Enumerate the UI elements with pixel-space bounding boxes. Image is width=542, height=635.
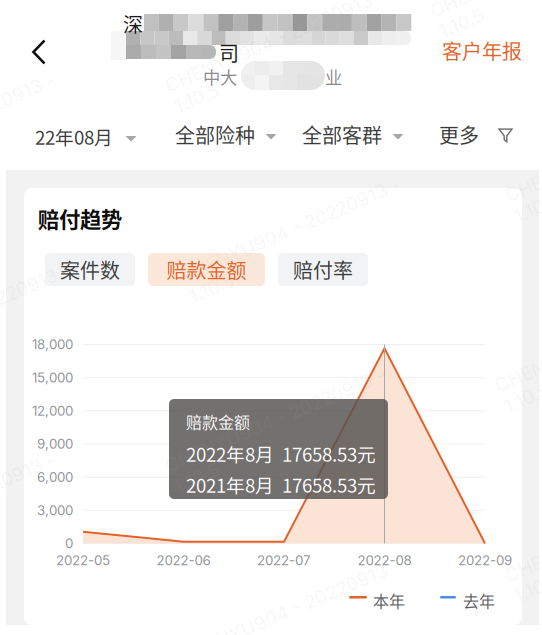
staticText: CHENYU904 - 20220913 - 1.10.5 [0, 488, 68, 534]
button[interactable]: 全部险种 [175, 120, 277, 149]
staticText: 深 [123, 9, 143, 38]
staticText: 2022-09 [458, 552, 512, 568]
staticText: 2022-08 [357, 552, 411, 568]
staticText: 2022-07 [257, 552, 311, 568]
button[interactable]: 赔款金额 [148, 253, 265, 286]
staticText: 赔付率 [293, 255, 353, 284]
staticText: 客户年报 [442, 36, 522, 65]
staticText: CHENYU904 - 20220913 - 1.10.5 [175, 213, 413, 259]
staticText: 司 [219, 38, 239, 67]
staticText: CHENYU904 - 20220913 - 1.10.5 [500, 513, 542, 559]
staticText: CHENYU904 - 20220913 - 1.10.5 [0, 108, 68, 154]
staticText: 赔款金额 [166, 255, 246, 284]
staticText: CHENYU904 - 20220913 - 1.10.5 [175, 593, 413, 635]
staticText: CHENYU904 - 20220913 - 1.10.5 [0, 298, 83, 344]
staticText: CHENYU904 - 20220913 - 1.10.5 [490, 323, 542, 369]
staticText: CHENYU904 - 20220913 - 1.10.5 [500, 133, 542, 179]
staticText: 案件数 [60, 255, 120, 284]
staticText: 12,000 [32, 403, 73, 419]
staticText: 2021年8月 17658.53元 [186, 471, 376, 498]
staticText: 2022-06 [156, 552, 210, 568]
staticText: 更多 [439, 120, 479, 149]
staticText: 本年 [373, 589, 405, 612]
button[interactable]: 更多 [439, 120, 513, 149]
staticText: 15,000 [32, 370, 73, 386]
button[interactable]: 案件数 [45, 253, 135, 286]
staticText: 18,000 [32, 336, 73, 352]
staticText: 全部险种 [175, 120, 255, 149]
button[interactable]: 22年08月 [35, 123, 137, 150]
staticText: 22年08月 [35, 123, 113, 150]
button[interactable]: 全部客群 [302, 120, 404, 149]
staticText: 业 [325, 64, 342, 89]
staticText: 0 [65, 535, 73, 551]
button[interactable]: 赔付率 [278, 253, 368, 286]
staticText: 6,000 [37, 469, 73, 485]
button[interactable]: 返回 [21, 32, 57, 72]
staticText: 去年 [463, 589, 495, 612]
staticText: 2022年8月 17658.53元 [186, 440, 376, 467]
staticText: 赔付趋势 [38, 203, 122, 234]
staticText: CHENYU904 - 20220913 - 1.10.5 [160, 403, 398, 449]
staticText: 2022-05 [56, 552, 110, 568]
staticText: 9,000 [37, 436, 73, 452]
button[interactable]: 客户年报 [442, 36, 522, 65]
staticText: 全部客群 [302, 120, 382, 149]
staticText: 3,000 [37, 502, 73, 518]
staticText: 赔款金额 [186, 410, 250, 433]
staticText: CHENYU904 - 20220913 - 1.10.5 [160, 23, 398, 69]
staticText: 中大 [203, 64, 237, 89]
